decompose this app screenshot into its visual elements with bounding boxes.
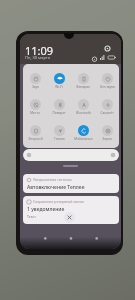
staticText: Сохранение резервной копии: [33, 199, 84, 204]
staticText: Место: [30, 111, 40, 115]
button[interactable]: Мобильные: [71, 125, 95, 141]
staticText: Энергосб: [28, 137, 43, 141]
staticText: Без звука: [100, 85, 115, 89]
staticText: Звук: [32, 85, 39, 89]
button[interactable]: Clear all notifications: [64, 212, 75, 223]
button[interactable]: Уведомления системы: [23, 174, 119, 193]
staticText: 11:09: [25, 43, 54, 58]
button[interactable]: Без звука: [95, 73, 119, 89]
button[interactable]: [23, 149, 119, 161]
staticText: Поворот: [52, 111, 66, 115]
button[interactable]: Фонарик: [71, 73, 95, 89]
staticText: Wi-Fi: [55, 85, 63, 89]
button[interactable]: Экран: [95, 125, 119, 141]
staticText: Самолёт: [100, 111, 114, 115]
button[interactable]: Энергосб: [23, 125, 47, 141]
button[interactable]: Сохранение резервной копии: [23, 196, 119, 224]
staticText: 1 уведомление: [27, 206, 65, 213]
staticText: Уведомления системы: [33, 177, 72, 182]
staticText: Экран: [102, 137, 112, 141]
staticText: Bluetooth: [76, 111, 91, 115]
button[interactable]: Самолёт: [95, 99, 119, 115]
button[interactable]: Bluetooth: [71, 99, 95, 115]
staticText: Геолок: [54, 137, 65, 141]
staticText: Автовключение Теплее: [27, 184, 85, 191]
staticText: Фонарик: [76, 85, 90, 89]
button[interactable]: Место: [23, 99, 47, 115]
staticText: Мобильные: [74, 137, 93, 141]
button[interactable]: Wi-Fi: [47, 73, 71, 89]
button[interactable]: Звук: [23, 73, 47, 89]
button[interactable]: Поворот: [47, 99, 71, 115]
button[interactable]: Геолок: [47, 125, 71, 141]
staticText: Текст: [27, 214, 36, 219]
button[interactable]: Settings: [104, 45, 111, 52]
staticText: Пн, 30 марта: [25, 55, 50, 60]
